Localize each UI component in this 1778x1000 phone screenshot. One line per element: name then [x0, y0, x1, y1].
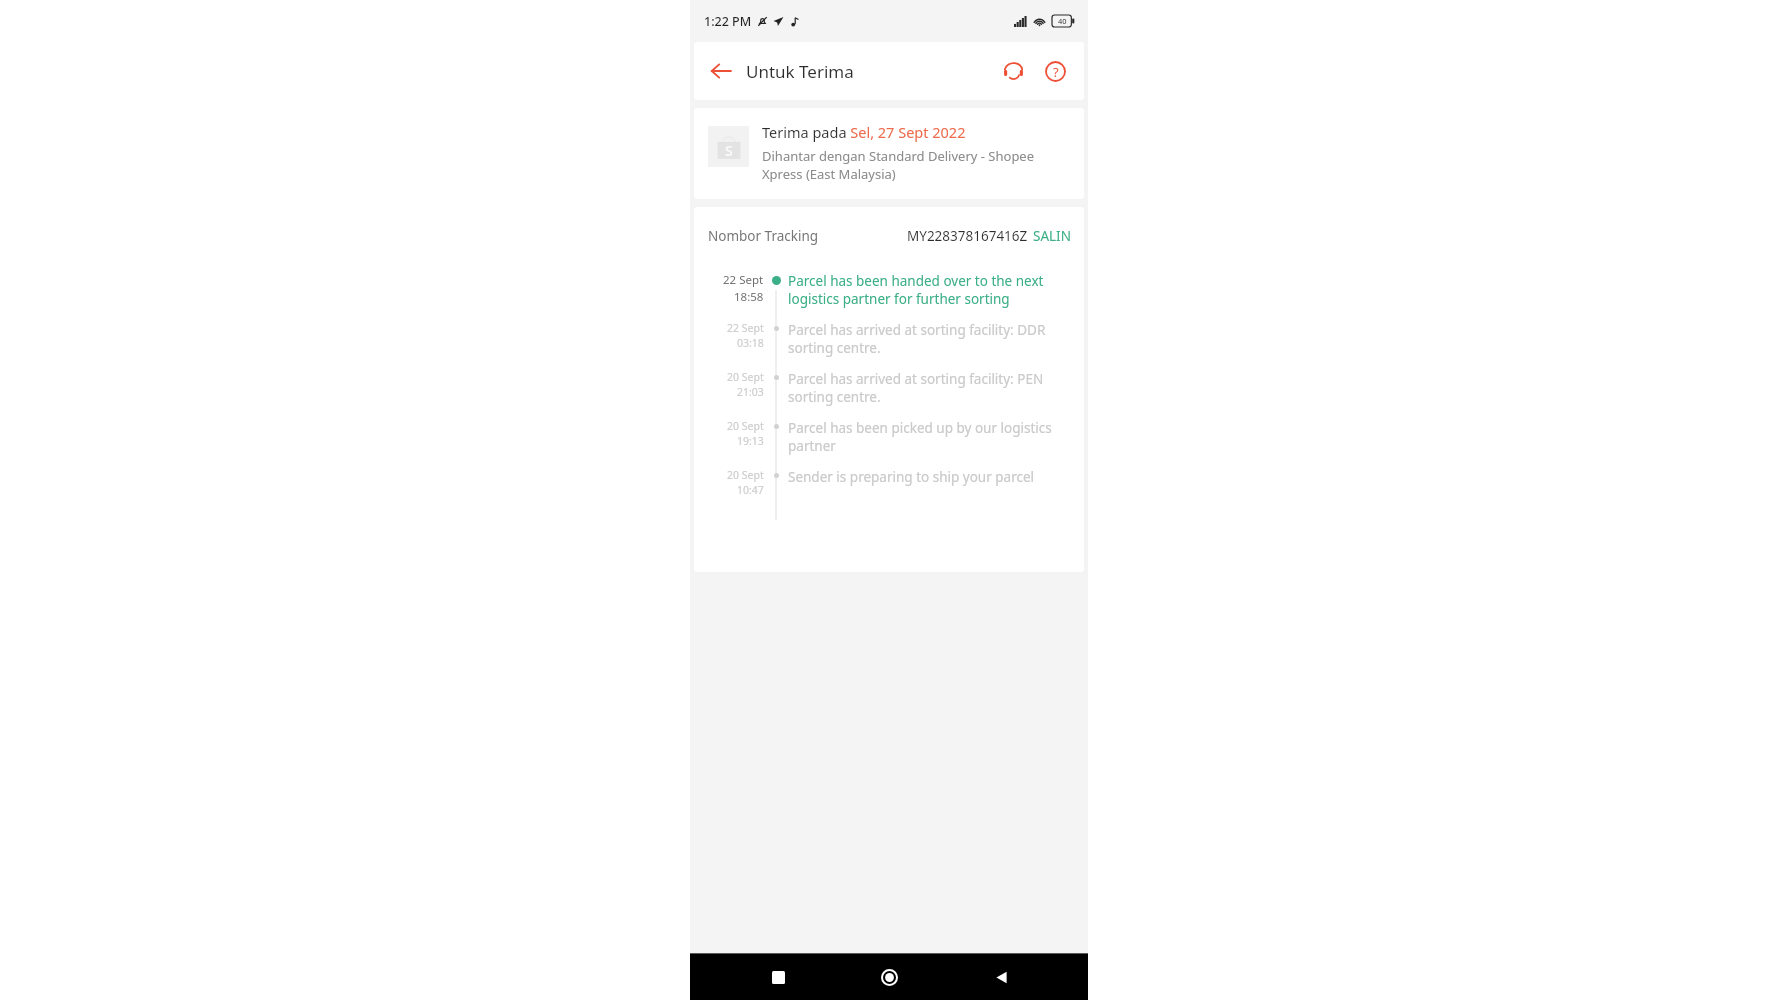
- button[interactable]: 22 Sept: [694, 321, 1084, 370]
- staticText: 20 Sept: [727, 419, 764, 433]
- staticText: Nombor Tracking: [708, 227, 819, 245]
- staticText: Parcel has been handed over to the next …: [788, 272, 1068, 308]
- staticText: Dihantar dengan Standard Delivery - Shop…: [762, 147, 1072, 183]
- staticText: 03:18: [737, 336, 764, 350]
- button[interactable]: Back: [700, 50, 742, 92]
- staticText: 20 Sept: [727, 370, 764, 384]
- button[interactable]: Home: [865, 954, 913, 1000]
- staticText: S: [725, 141, 733, 160]
- staticText: 20 Sept: [727, 468, 764, 482]
- staticText: Parcel has arrived at sorting facility: …: [788, 321, 1068, 357]
- button[interactable]: 20 Sept: [694, 370, 1084, 419]
- button[interactable]: Recent apps: [754, 954, 802, 1000]
- staticText: 18:58: [734, 289, 764, 305]
- staticText: 1:22 PM: [704, 13, 752, 30]
- button[interactable]: 20 Sept: [694, 419, 1084, 468]
- staticText: Sender is preparing to ship your parcel: [788, 468, 1035, 486]
- staticText: 10:47: [737, 483, 764, 497]
- staticText: SALIN: [1033, 227, 1071, 245]
- staticText: Parcel has arrived at sorting facility: …: [788, 370, 1068, 406]
- staticText: Untuk Terima: [746, 60, 854, 83]
- button[interactable]: Back: [977, 954, 1025, 1000]
- button[interactable]: 22 Sept: [694, 272, 1084, 321]
- button[interactable]: Help: [1034, 50, 1076, 92]
- button[interactable]: 20 Sept: [694, 468, 1084, 497]
- staticText: 21:03: [737, 385, 764, 399]
- button[interactable]: S: [694, 108, 1084, 199]
- button[interactable]: SALIN: [1028, 224, 1072, 248]
- staticText: 22 Sept: [727, 321, 764, 335]
- staticText: ?: [1053, 63, 1059, 81]
- staticText: MY228378167416Z: [907, 227, 1028, 245]
- staticText: 22 Sept: [723, 272, 764, 288]
- button[interactable]: Customer support: [992, 50, 1034, 92]
- staticText: 40: [1058, 16, 1067, 26]
- staticText: Terima pada Sel, 27 Sept 2022: [762, 122, 966, 142]
- staticText: Parcel has been picked up by our logisti…: [788, 419, 1068, 455]
- staticText: 19:13: [737, 434, 764, 448]
